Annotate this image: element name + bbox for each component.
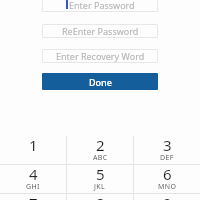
- staticText: 7: [29, 193, 38, 200]
- staticText: 3: [163, 135, 172, 155]
- staticText: 8: [96, 193, 105, 200]
- button[interactable]: 9: [134, 194, 200, 200]
- button[interactable]: 5: [67, 165, 133, 193]
- staticText: JKL: [94, 182, 106, 192]
- staticText: DEF: [160, 153, 174, 163]
- staticText: 1: [29, 135, 38, 155]
- staticText: ABC: [93, 153, 108, 163]
- button[interactable]: ReEnter Password: [42, 24, 158, 38]
- button[interactable]: Done: [42, 73, 158, 90]
- button[interactable]: 8: [67, 194, 133, 200]
- staticText: GHI: [26, 182, 40, 192]
- staticText: Enter Password: [69, 0, 135, 11]
- staticText: Enter Recovery Word: [56, 50, 145, 62]
- button[interactable]: 1: [0, 136, 66, 164]
- button[interactable]: 4: [0, 165, 66, 193]
- staticText: 6: [163, 164, 172, 184]
- button[interactable]: Enter Password: [42, 0, 158, 12]
- staticText: MNO: [158, 182, 177, 192]
- button[interactable]: 7: [0, 194, 66, 200]
- staticText: 9: [163, 193, 172, 200]
- button[interactable]: 2: [67, 136, 133, 164]
- staticText: 5: [96, 164, 105, 184]
- staticText: Done: [89, 76, 112, 88]
- staticText: 4: [29, 164, 38, 184]
- button[interactable]: 3: [134, 136, 200, 164]
- staticText: ReEnter Password: [62, 25, 139, 37]
- staticText: 2: [96, 135, 105, 155]
- button[interactable]: Enter Recovery Word: [42, 49, 158, 63]
- button[interactable]: 6: [134, 165, 200, 193]
